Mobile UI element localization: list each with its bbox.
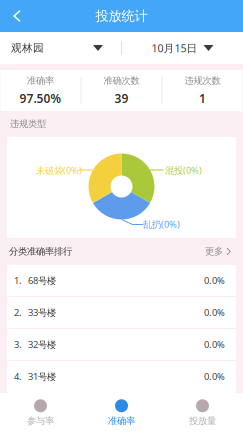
button[interactable]: 1. — [7, 265, 236, 297]
staticText: 分类准确率排行 — [9, 246, 72, 257]
staticText: 违规类型 — [10, 118, 46, 130]
staticText: 31号楼 — [28, 370, 56, 383]
button[interactable]: 2. — [7, 297, 236, 329]
staticText: 参与率 — [27, 415, 54, 427]
button[interactable]: 观林园 — [0, 32, 121, 64]
staticText: 33号楼 — [28, 306, 56, 319]
staticText: 准确次数 — [103, 75, 139, 86]
staticText: 违规次数 — [184, 75, 220, 86]
staticText: 准确率 — [27, 75, 54, 86]
button[interactable]: 投放量 — [162, 393, 243, 433]
staticText: 68号楼 — [28, 274, 56, 287]
button[interactable]: 3. — [7, 329, 236, 361]
staticText: 更多 — [205, 246, 223, 257]
button[interactable]: Back — [0, 0, 34, 32]
staticText: 乱扔(0%) — [143, 218, 180, 230]
button[interactable]: 10月15日 — [122, 32, 243, 64]
staticText: 投放量 — [189, 415, 216, 427]
staticText: 0.0% — [204, 274, 225, 287]
staticText: 39 — [114, 90, 128, 106]
staticText: 1 — [199, 90, 206, 106]
staticText: 0.0% — [204, 306, 225, 319]
staticText: 0.0% — [204, 370, 225, 383]
staticText: 观林园 — [11, 41, 44, 54]
staticText: 1. — [14, 274, 22, 287]
staticText: 准确率 — [108, 415, 135, 427]
staticText: 0.0% — [204, 338, 225, 351]
button[interactable]: 4. — [7, 361, 236, 393]
button[interactable]: 更多 — [205, 240, 232, 263]
staticText: 3. — [14, 338, 22, 351]
staticText: 混投(0%) — [165, 164, 202, 176]
staticText: 10月15日 — [151, 41, 197, 55]
staticText: 32号楼 — [28, 338, 56, 351]
button[interactable]: 准确率 — [81, 393, 162, 433]
button[interactable]: 参与率 — [0, 393, 81, 433]
staticText: 2. — [14, 306, 22, 319]
staticText: 未破袋(0%) — [36, 164, 82, 176]
staticText: 4. — [14, 370, 22, 383]
staticText: 97.50% — [19, 90, 61, 106]
staticText: 投放统计 — [95, 8, 147, 24]
